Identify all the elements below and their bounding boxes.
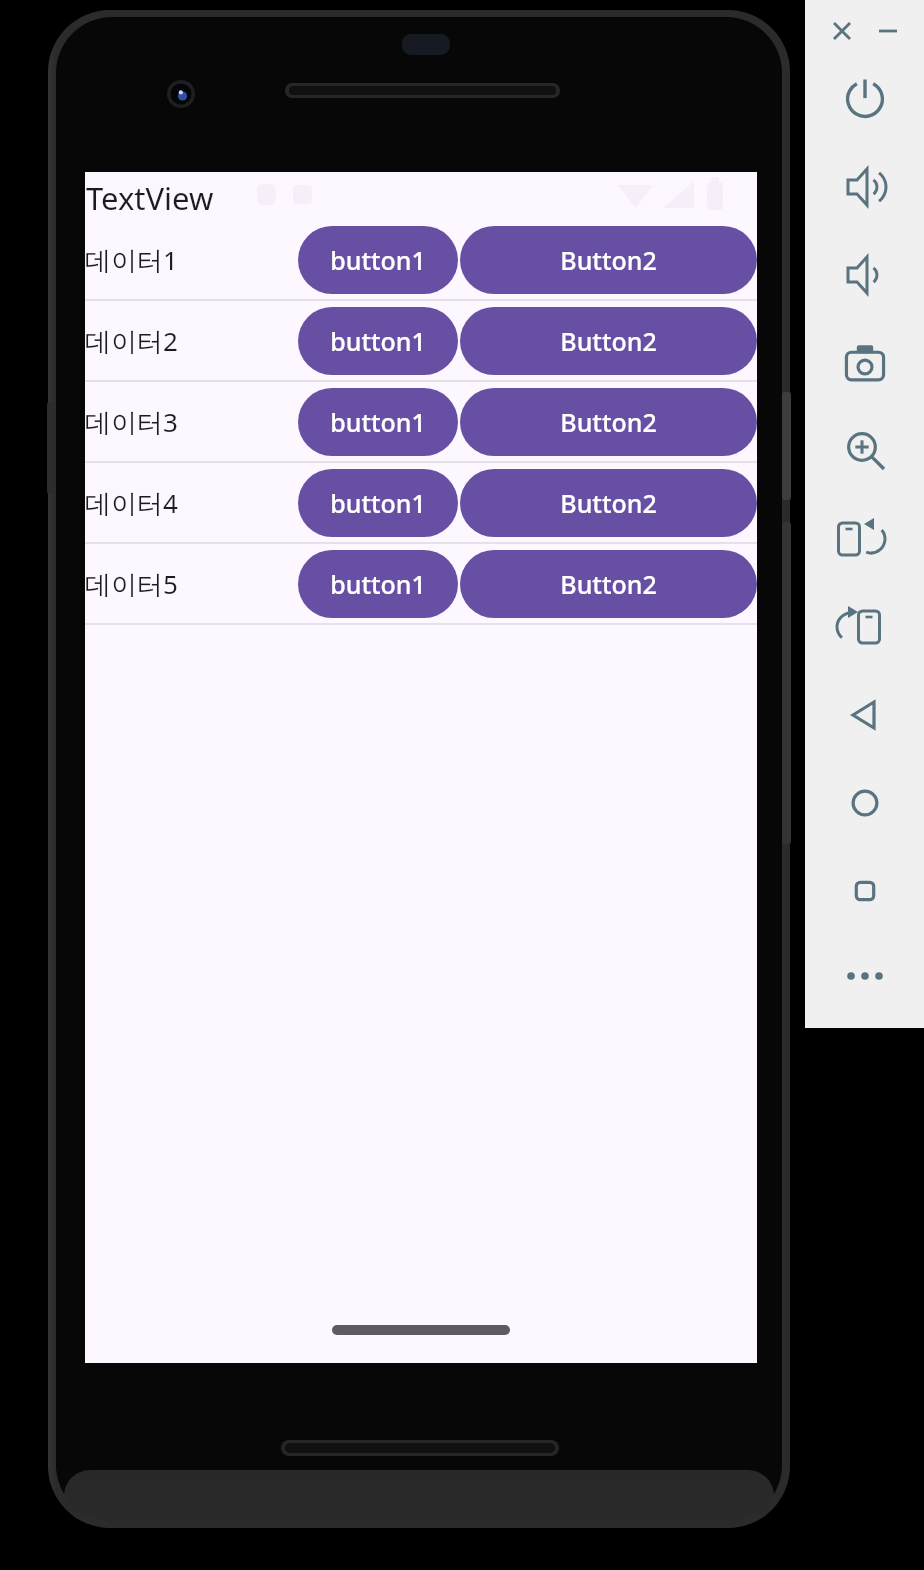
staticText: button1	[330, 567, 426, 601]
staticText: button1	[330, 405, 426, 439]
button[interactable]: Rotate right	[836, 598, 894, 656]
staticText: button1	[330, 324, 426, 358]
staticText: 데이터4	[85, 485, 178, 521]
staticText: 데이터3	[85, 404, 178, 440]
staticText: 데이터5	[85, 566, 178, 602]
button[interactable]: Overview	[836, 862, 894, 920]
staticText: Button2	[560, 567, 657, 601]
button[interactable]: Button2	[460, 469, 757, 537]
button[interactable]: button1	[298, 469, 458, 537]
staticText: Button2	[560, 486, 657, 520]
button[interactable]: Button2	[460, 550, 757, 618]
staticText: TextView	[86, 177, 214, 219]
button[interactable]: Rotate left	[836, 510, 894, 568]
button[interactable]: Close	[823, 12, 861, 50]
staticText: button1	[330, 486, 426, 520]
button[interactable]: Power	[836, 70, 894, 128]
button[interactable]: button1	[298, 307, 458, 375]
button[interactable]: button1	[298, 226, 458, 294]
button[interactable]: Button2	[460, 226, 757, 294]
button[interactable]: Button2	[460, 307, 757, 375]
button[interactable]: Zoom in	[836, 422, 894, 480]
staticText: button1	[330, 243, 426, 277]
staticText: Button2	[560, 243, 657, 277]
button[interactable]: Volume up	[836, 158, 894, 216]
staticText: 데이터2	[85, 323, 178, 359]
staticText: 데이터1	[85, 242, 178, 278]
button[interactable]: Minimize	[869, 12, 907, 50]
button[interactable]: Back	[836, 686, 894, 744]
button[interactable]: button1	[298, 550, 458, 618]
staticText: Button2	[560, 405, 657, 439]
button[interactable]: Home	[836, 774, 894, 832]
button[interactable]: Screenshot	[836, 334, 894, 392]
button[interactable]: Button2	[460, 388, 757, 456]
button[interactable]: Volume down	[836, 246, 894, 304]
staticText: Button2	[560, 324, 657, 358]
button[interactable]: button1	[298, 388, 458, 456]
button[interactable]: More options	[836, 947, 894, 1005]
